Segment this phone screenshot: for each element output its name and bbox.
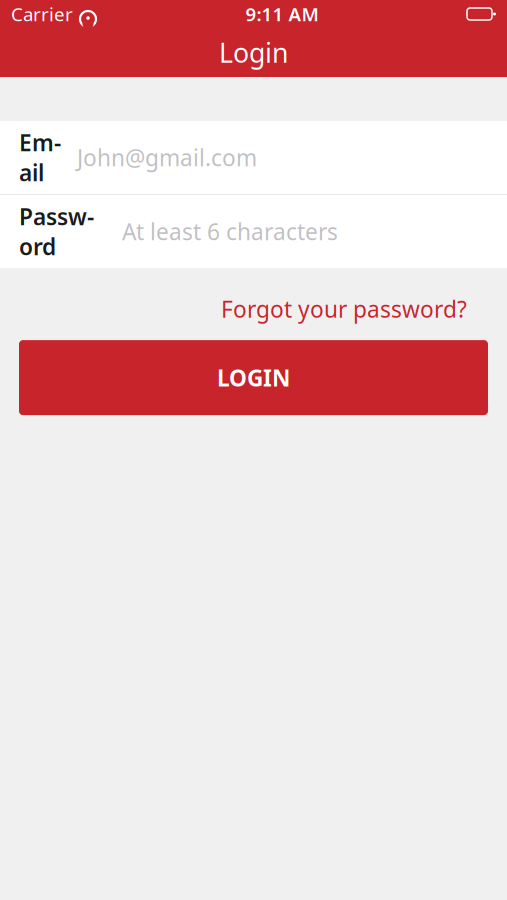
button[interactable]: LOGIN [19,340,488,415]
staticText: 9:11 AM [245,2,318,26]
staticText: LOGIN [217,363,290,393]
staticText: Forgot your password? [221,294,467,324]
staticText: Carrier [11,2,73,26]
button[interactable]: Forgot your password? [221,284,467,334]
staticText: At least 6 characters [122,216,338,246]
staticText: John@gmail.com [77,142,257,172]
staticText: Email [19,127,61,188]
button[interactable]: Password [0,195,507,268]
staticText: Password [19,201,94,262]
staticText: Login [219,35,288,70]
button[interactable]: Email [0,121,507,194]
